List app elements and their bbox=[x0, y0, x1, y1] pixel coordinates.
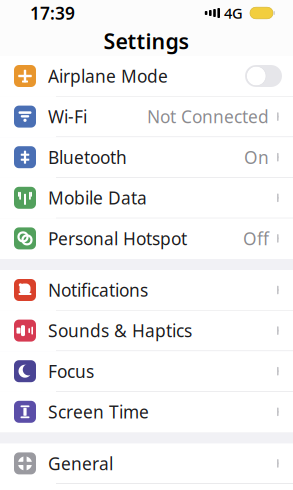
button[interactable]: Bluetooth bbox=[0, 137, 293, 178]
staticText: Wi-Fi bbox=[48, 105, 87, 128]
button[interactable]: Focus bbox=[0, 351, 293, 392]
button[interactable]: Wi-Fi bbox=[0, 97, 293, 137]
staticText: Sounds & Haptics bbox=[48, 319, 192, 342]
staticText: 17:39 bbox=[30, 1, 75, 24]
staticText: Bluetooth bbox=[48, 146, 127, 169]
staticText: Off bbox=[243, 227, 269, 250]
staticText: Personal Hotspot bbox=[48, 227, 187, 250]
staticText: 4G bbox=[224, 3, 243, 23]
staticText: Not Connected bbox=[147, 105, 269, 128]
button[interactable]: Sounds & Haptics bbox=[0, 311, 293, 351]
button[interactable]: Screen Time bbox=[0, 392, 293, 432]
staticText: On bbox=[244, 146, 269, 169]
button[interactable]: Airplane Mode bbox=[0, 56, 293, 97]
staticText: Mobile Data bbox=[48, 186, 147, 209]
button[interactable]: Personal Hotspot bbox=[0, 218, 293, 259]
staticText: Airplane Mode bbox=[48, 64, 168, 87]
staticText: General bbox=[48, 452, 113, 475]
button[interactable]: Notifications bbox=[0, 270, 293, 311]
button[interactable]: General bbox=[0, 443, 293, 484]
staticText: Settings bbox=[103, 27, 189, 55]
button[interactable]: Mobile Data bbox=[0, 178, 293, 218]
staticText: Focus bbox=[48, 360, 94, 383]
staticText: Screen Time bbox=[48, 400, 149, 423]
staticText: Notifications bbox=[48, 278, 148, 301]
